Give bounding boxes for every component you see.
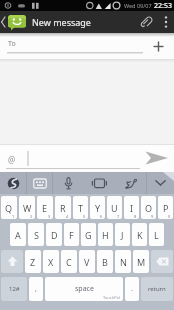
staticText: S bbox=[34, 229, 39, 241]
button[interactable]: space bbox=[45, 277, 123, 301]
staticText: F bbox=[69, 229, 74, 241]
staticText: 5 bbox=[83, 214, 86, 219]
staticText: M bbox=[137, 256, 146, 268]
button[interactable]: R bbox=[55, 196, 71, 219]
staticText: X bbox=[48, 256, 54, 268]
button[interactable]: @ bbox=[0, 144, 174, 172]
button[interactable] bbox=[84, 172, 115, 194]
button[interactable]: I bbox=[124, 196, 139, 219]
staticText: J bbox=[121, 229, 124, 241]
staticText: B bbox=[102, 256, 108, 268]
staticText: I bbox=[130, 202, 134, 214]
button[interactable]: M bbox=[133, 250, 149, 273]
staticText: R bbox=[60, 202, 66, 214]
staticText: @ bbox=[8, 154, 16, 165]
button[interactable]: , bbox=[29, 277, 43, 301]
button[interactable]: B bbox=[97, 250, 113, 273]
staticText: 12# bbox=[9, 285, 20, 293]
button[interactable]: U bbox=[107, 196, 122, 219]
button[interactable] bbox=[1, 250, 23, 273]
staticText: 7 bbox=[117, 214, 120, 219]
button[interactable]: L bbox=[149, 223, 164, 246]
button[interactable]: Q bbox=[1, 196, 17, 219]
staticText: C bbox=[66, 256, 72, 268]
staticText: To bbox=[8, 39, 16, 49]
button[interactable]: F bbox=[64, 223, 79, 246]
staticText: H bbox=[102, 229, 109, 241]
button[interactable]: Y bbox=[90, 196, 105, 219]
button[interactable]: A bbox=[10, 223, 26, 246]
staticText: D bbox=[51, 229, 58, 241]
button[interactable]: S bbox=[28, 223, 44, 246]
staticText: E bbox=[42, 202, 48, 214]
staticText: 8 bbox=[134, 214, 137, 219]
staticText: V bbox=[84, 256, 90, 268]
staticText: 9 bbox=[151, 214, 154, 219]
button[interactable]: V bbox=[79, 250, 95, 273]
button[interactable]: X bbox=[43, 250, 59, 273]
staticText: 4 bbox=[66, 214, 69, 219]
staticText: space bbox=[75, 284, 94, 294]
button[interactable] bbox=[53, 172, 84, 194]
staticText: . bbox=[131, 284, 133, 294]
staticText: Z bbox=[30, 256, 36, 268]
button[interactable]: Z bbox=[25, 250, 41, 273]
button[interactable]: G bbox=[81, 223, 96, 246]
staticText: T bbox=[78, 202, 84, 214]
staticText: Q bbox=[5, 202, 13, 214]
button[interactable] bbox=[147, 172, 174, 194]
button[interactable]: return bbox=[141, 277, 173, 301]
button[interactable]: T bbox=[73, 196, 88, 219]
staticText: , bbox=[35, 284, 37, 294]
staticText: New message bbox=[32, 16, 91, 28]
staticText: Y bbox=[95, 202, 101, 214]
staticText: N bbox=[120, 256, 127, 268]
button[interactable]: W bbox=[19, 196, 35, 219]
button[interactable] bbox=[136, 11, 158, 33]
staticText: 2 bbox=[30, 214, 33, 219]
button[interactable] bbox=[115, 172, 146, 194]
staticText: P bbox=[163, 202, 169, 214]
staticText: W bbox=[23, 202, 32, 214]
button[interactable] bbox=[158, 11, 174, 33]
staticText: A bbox=[15, 229, 21, 241]
staticText: L bbox=[154, 229, 159, 241]
button[interactable]: N bbox=[115, 250, 131, 273]
staticText: 6 bbox=[100, 214, 103, 219]
staticText: U bbox=[111, 202, 118, 214]
staticText: 0 bbox=[168, 214, 171, 219]
button[interactable]: K bbox=[132, 223, 147, 246]
button[interactable]: New message bbox=[0, 11, 174, 33]
staticText: 1 bbox=[12, 214, 15, 219]
staticText: G bbox=[85, 229, 92, 241]
staticText: 22:53 bbox=[154, 1, 172, 11]
staticText: 3 bbox=[48, 214, 51, 219]
button[interactable] bbox=[0, 172, 26, 194]
button[interactable] bbox=[27, 172, 52, 194]
staticText: O bbox=[145, 202, 153, 214]
button[interactable]: 12# bbox=[1, 277, 27, 301]
button[interactable]: D bbox=[46, 223, 62, 246]
button[interactable] bbox=[151, 250, 173, 273]
button[interactable]: O bbox=[141, 196, 156, 219]
button[interactable]: C bbox=[61, 250, 77, 273]
staticText: K bbox=[137, 229, 143, 241]
button[interactable]: H bbox=[98, 223, 113, 246]
staticText: TouchPal bbox=[103, 295, 120, 300]
button[interactable]: P bbox=[158, 196, 173, 219]
staticText: return bbox=[148, 285, 166, 293]
staticText: Wed 09/07 bbox=[124, 2, 152, 9]
button[interactable]: J bbox=[115, 223, 130, 246]
button[interactable]: . bbox=[125, 277, 139, 301]
button[interactable]: E bbox=[37, 196, 53, 219]
button[interactable]: To bbox=[0, 33, 174, 59]
